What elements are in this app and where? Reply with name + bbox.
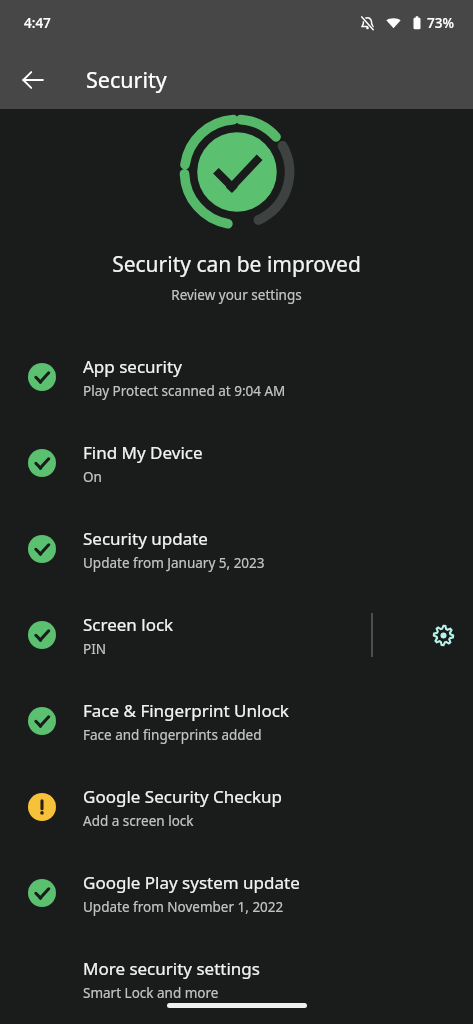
button[interactable]: Google Play system update [0, 850, 473, 936]
staticText: Update from January 5, 2023 [83, 554, 265, 572]
button[interactable]: Face & Fingerprint Unlock [0, 678, 473, 764]
staticText: Play Protect scanned at 9:04 AM [83, 382, 286, 400]
staticText: Smart Lock and more [83, 984, 219, 1002]
staticText: PIN [83, 640, 107, 658]
staticText: Security [86, 65, 167, 94]
staticText: 4:47 [24, 14, 51, 32]
staticText: Face and fingerprints added [83, 726, 262, 744]
button[interactable]: Google Security Checkup [0, 764, 473, 850]
staticText: Review your settings [171, 286, 302, 304]
button[interactable]: App security [0, 334, 473, 420]
staticText: Face & Fingerprint Unlock [83, 699, 289, 722]
staticText: Security can be improved [112, 250, 361, 279]
staticText: Google Security Checkup [83, 785, 283, 808]
button[interactable]: More security settings [0, 936, 473, 1022]
button[interactable]: Security update [0, 506, 473, 592]
button[interactable]: Find My Device [0, 420, 473, 506]
staticText: Add a screen lock [83, 812, 194, 830]
staticText: App security [83, 355, 182, 378]
button[interactable]: Screen lock settings [419, 611, 467, 659]
button[interactable]: Screen lock [0, 592, 473, 678]
staticText: Screen lock [83, 613, 174, 636]
button[interactable]: Back [9, 56, 57, 104]
staticText: On [83, 468, 102, 486]
staticText: Find My Device [83, 441, 203, 464]
staticText: More security settings [83, 957, 260, 980]
staticText: 73% [427, 14, 454, 32]
staticText: Security update [83, 527, 208, 550]
staticText: Google Play system update [83, 871, 300, 894]
staticText: Update from November 1, 2022 [83, 898, 284, 916]
